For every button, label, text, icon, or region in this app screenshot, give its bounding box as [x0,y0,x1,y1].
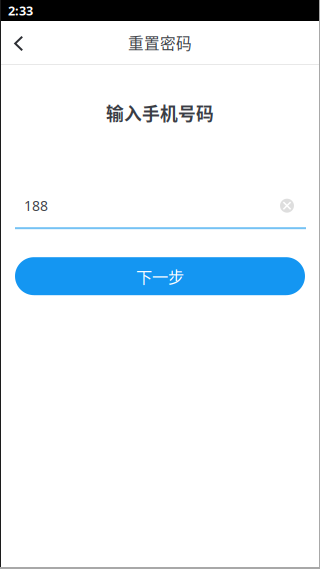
staticText: 输入手机号码 [106,100,214,126]
staticText: 188 [24,196,48,215]
staticText: 重置密码 [128,31,192,54]
button[interactable]: Clear text [274,193,300,219]
staticText: 2:33 [8,2,33,19]
button[interactable]: Back [0,21,46,64]
button[interactable]: 下一步 [15,257,305,295]
staticText: 下一步 [136,264,184,288]
